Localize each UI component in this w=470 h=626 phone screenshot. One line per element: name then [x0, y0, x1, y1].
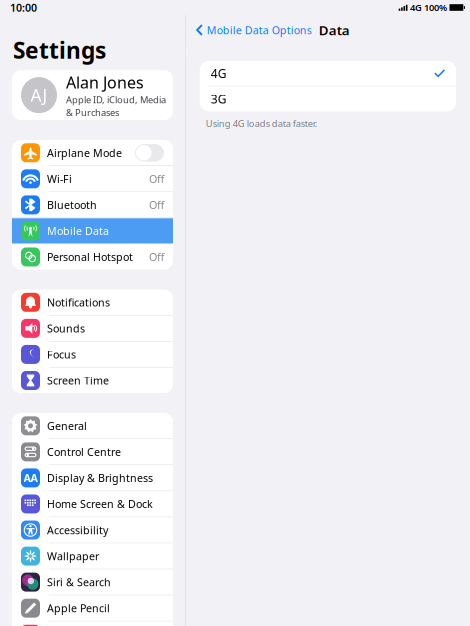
button[interactable]: Mobile Data [12, 218, 173, 244]
staticText: 10:00 [10, 0, 37, 15]
staticText: 3G [211, 91, 227, 107]
staticText: General [47, 419, 87, 433]
staticText: Apple Pencil [47, 601, 110, 615]
button[interactable]: 4G [200, 61, 456, 86]
staticText: Using 4G loads data faster. [206, 117, 318, 130]
staticText: Off [149, 250, 164, 264]
staticText: Bluetooth [47, 198, 97, 212]
button[interactable]: Home Screen & Dock [12, 491, 173, 517]
button[interactable]: 3G [200, 86, 456, 111]
staticText: Settings [13, 35, 106, 65]
button[interactable]: Wi-Fi [12, 166, 173, 192]
button[interactable]: Bluetooth [12, 192, 173, 218]
staticText: Control Centre [47, 445, 121, 459]
staticText: Focus [47, 347, 76, 361]
staticText: Siri & Search [47, 575, 111, 589]
button[interactable]: Wallpaper [12, 543, 173, 569]
staticText: Sounds [47, 321, 85, 335]
staticText: Notifications [47, 295, 110, 309]
staticText: AJ [30, 84, 47, 107]
staticText: 4G 100% [410, 1, 447, 14]
staticText: Wi-Fi [47, 172, 72, 186]
staticText: Off [149, 198, 164, 212]
staticText: Home Screen & Dock [47, 497, 153, 511]
staticText: Accessibility [47, 523, 108, 537]
button[interactable]: Airplane Mode [12, 140, 173, 165]
button[interactable]: AA [12, 465, 173, 491]
button[interactable]: Personal Hotspot [12, 244, 173, 270]
staticText: Personal Hotspot [47, 250, 133, 264]
button[interactable]: Siri & Search [12, 569, 173, 595]
staticText: Display & Brightness [47, 471, 153, 485]
staticText: AA [23, 471, 37, 485]
button[interactable]: Apple Pencil [12, 595, 173, 621]
staticText: Data [319, 21, 350, 39]
staticText: Wallpaper [47, 549, 99, 563]
staticText: Mobile Data Options [207, 23, 312, 37]
staticText: Alan Jones [66, 72, 144, 93]
button[interactable]: Focus [12, 342, 173, 367]
staticText: Screen Time [47, 373, 109, 388]
button[interactable]: Screen Time [12, 368, 173, 393]
button[interactable]: Touch ID & Passcode [12, 622, 173, 626]
button[interactable]: Control Centre [12, 439, 173, 465]
staticText: & Purchases [66, 106, 119, 119]
button[interactable]: AJ [12, 70, 173, 120]
button[interactable]: Sounds [12, 316, 173, 341]
button[interactable]: Notifications [12, 290, 173, 315]
staticText: Airplane Mode [47, 146, 122, 160]
staticText: 4G [211, 65, 227, 81]
staticText: Off [149, 172, 164, 186]
staticText: Apple ID, iCloud, Media [66, 93, 166, 106]
button[interactable]: General [12, 413, 173, 439]
button[interactable]: Accessibility [12, 517, 173, 543]
button[interactable]: Mobile Data Options [186, 16, 320, 44]
staticText: Mobile Data [47, 224, 109, 238]
